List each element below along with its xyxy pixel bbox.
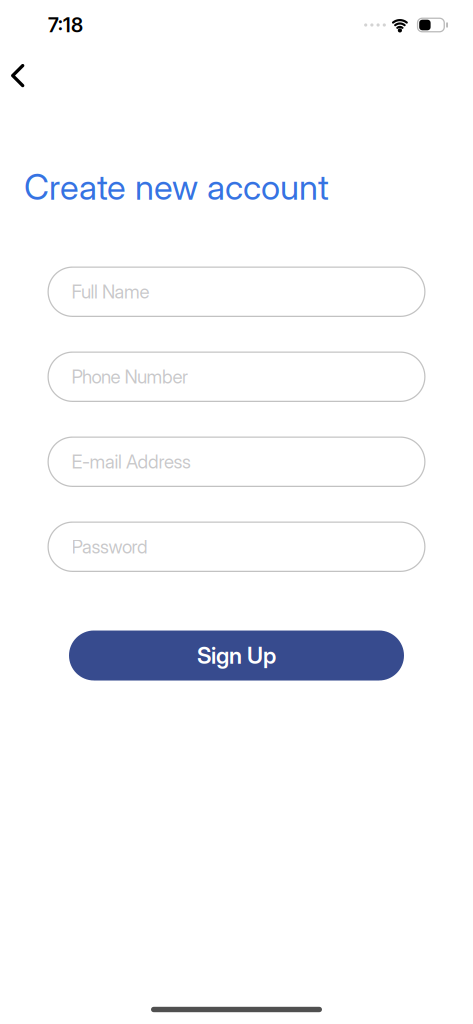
button[interactable]: Sign Up [69,630,404,680]
button[interactable]: E-mail Address [47,436,425,487]
staticText: Password [71,536,148,558]
button[interactable]: Full Name [47,266,425,317]
button[interactable]: Phone Number [47,351,425,402]
staticText: Phone Number [71,366,188,388]
button[interactable]: Back [0,50,23,86]
button[interactable]: Password [47,521,425,572]
staticText: 7:18 [48,13,83,37]
staticText: Create new account [24,167,329,207]
staticText: Full Name [71,281,149,303]
staticText: Sign Up [197,642,276,669]
staticText: E-mail Address [71,451,191,473]
